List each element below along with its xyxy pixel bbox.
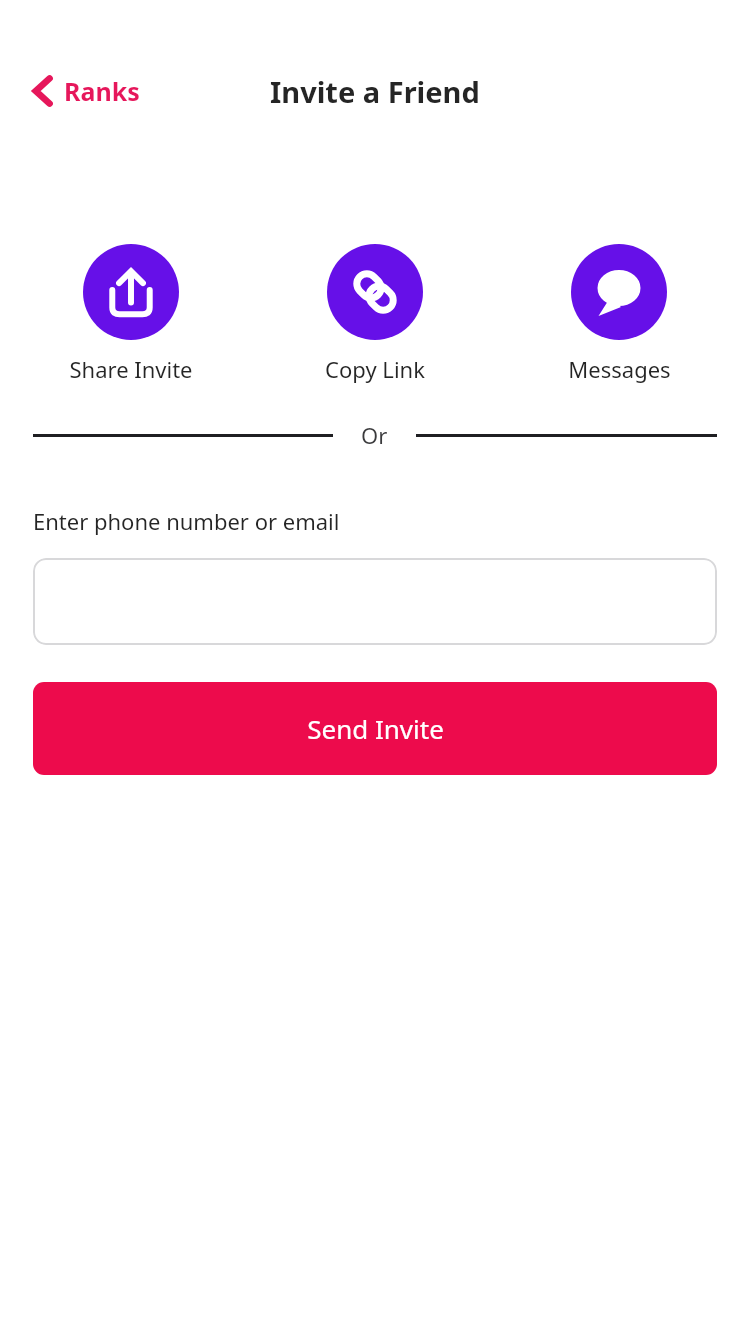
button[interactable]: Messages	[514, 244, 724, 384]
button[interactable]: Copy Link	[285, 244, 465, 384]
button[interactable]: Send Invite	[33, 682, 717, 775]
button[interactable]: Share Invite	[26, 244, 236, 384]
staticText: Ranks	[64, 74, 140, 108]
staticText: Send Invite	[307, 711, 444, 746]
staticText: Messages	[568, 354, 671, 384]
staticText: Share Invite	[69, 354, 193, 384]
staticText: Enter phone number or email	[33, 506, 340, 536]
staticText: Copy Link	[325, 354, 425, 384]
staticText: Invite a Friend	[270, 72, 480, 111]
button[interactable]: Back to Ranks	[26, 70, 146, 112]
staticText: Or	[361, 420, 388, 450]
button[interactable]: Enter phone number or email	[33, 558, 717, 645]
